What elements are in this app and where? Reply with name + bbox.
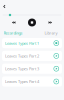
staticText: Leaves Types Part 4 bbox=[5, 79, 39, 84]
button[interactable]: Library bbox=[40, 29, 62, 36]
staticText: Library bbox=[44, 30, 57, 36]
button[interactable]: Stop bbox=[28, 18, 36, 26]
button[interactable]: Back bbox=[0, 2, 9, 11]
staticText: Leaves Types Part 1 bbox=[5, 40, 39, 46]
button[interactable]: Leaves Types Part 2 bbox=[2, 51, 62, 61]
button[interactable]: Leaves Types Part 3 bbox=[2, 64, 62, 74]
staticText: Leaves Types Part 2 bbox=[5, 53, 39, 58]
button[interactable]: Leaves Types Part 1 bbox=[2, 38, 62, 48]
staticText: Recordings bbox=[3, 30, 22, 36]
button[interactable]: Leaves Types Part 4 bbox=[2, 76, 62, 87]
button[interactable]: Recordings bbox=[2, 29, 24, 36]
button[interactable]: Rewind bbox=[9, 18, 18, 27]
staticText: Leaves Types Part 3 bbox=[5, 66, 39, 71]
button[interactable]: Forward bbox=[46, 18, 55, 27]
